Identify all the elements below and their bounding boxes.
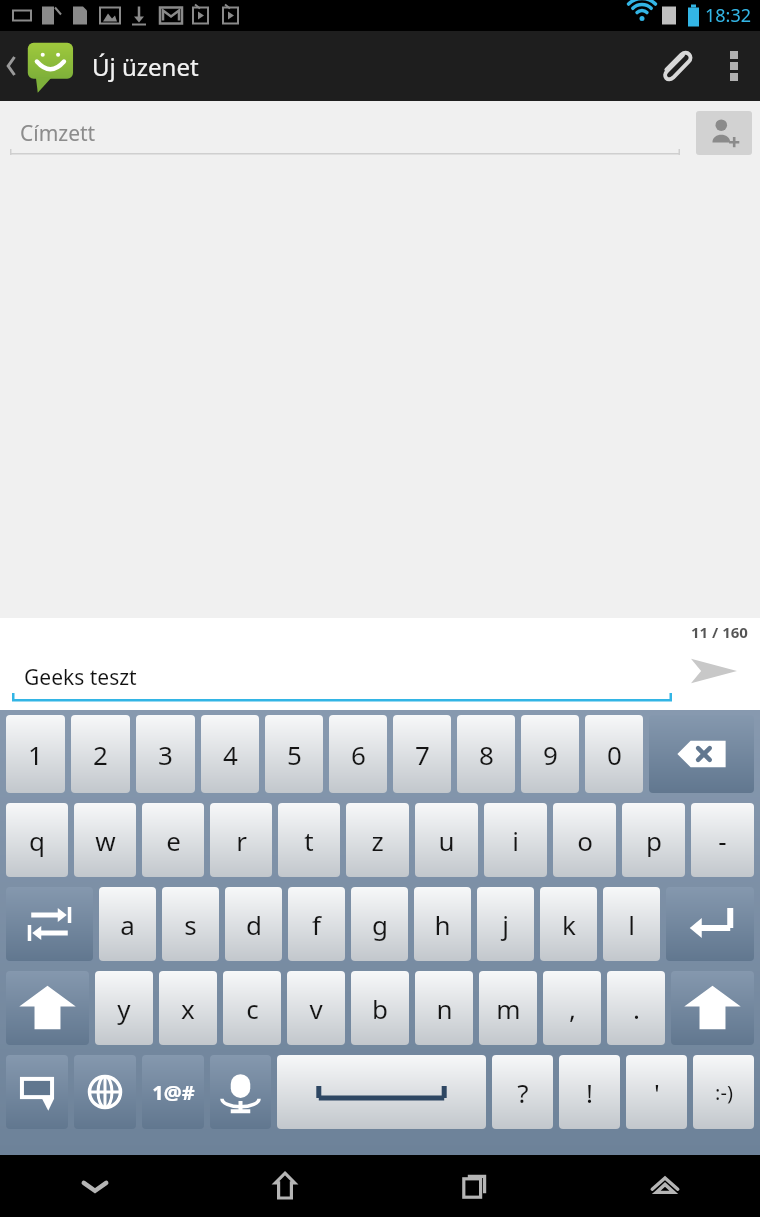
- button[interactable]: ': [626, 1055, 687, 1129]
- button[interactable]: up: [190, 1155, 380, 1217]
- button[interactable]: s: [162, 887, 219, 961]
- button[interactable]: Delete: [649, 715, 754, 793]
- button[interactable]: i: [484, 803, 547, 877]
- button[interactable]: l: [603, 887, 660, 961]
- button[interactable]: u: [415, 803, 478, 877]
- staticText: 1: [28, 737, 43, 772]
- button[interactable]: 9: [521, 715, 579, 793]
- staticText: m: [496, 991, 521, 1026]
- staticText: t: [304, 823, 314, 858]
- staticText: 18:32: [705, 3, 752, 28]
- button[interactable]: ?: [492, 1055, 553, 1129]
- button[interactable]: y: [95, 971, 153, 1045]
- button[interactable]: home: [570, 1155, 760, 1217]
- button[interactable]: Shift: [6, 971, 89, 1045]
- staticText: v: [309, 991, 323, 1026]
- button[interactable]: 6: [329, 715, 387, 793]
- staticText: i: [512, 823, 519, 858]
- button[interactable]: More options: [708, 31, 760, 101]
- button[interactable]: Keyboard settings: [6, 1055, 68, 1129]
- button[interactable]: j: [477, 887, 534, 961]
- button[interactable]: recents: [380, 1155, 570, 1217]
- button[interactable]: Új üzenet: [0, 37, 207, 95]
- button[interactable]: Attach: [642, 31, 708, 101]
- button[interactable]: down: [0, 1155, 190, 1217]
- staticText: j: [502, 907, 509, 942]
- staticText: l: [628, 907, 635, 942]
- staticText: .: [633, 991, 640, 1026]
- button[interactable]: n: [415, 971, 473, 1045]
- staticText: p: [646, 823, 662, 858]
- button[interactable]: Language: [74, 1055, 136, 1129]
- staticText: !: [586, 1075, 593, 1110]
- button[interactable]: r: [210, 803, 272, 877]
- button[interactable]: o: [553, 803, 616, 877]
- button[interactable]: g: [351, 887, 408, 961]
- button[interactable]: a: [99, 887, 156, 961]
- staticText: a: [120, 907, 135, 942]
- button[interactable]: h: [414, 887, 471, 961]
- button[interactable]: Space: [277, 1055, 486, 1129]
- staticText: 8: [479, 737, 494, 772]
- button[interactable]: Enter: [666, 887, 754, 961]
- button[interactable]: q: [6, 803, 68, 877]
- staticText: 1@#: [152, 1079, 195, 1106]
- button[interactable]: k: [540, 887, 597, 961]
- staticText: 7: [415, 737, 430, 772]
- staticText: f: [312, 907, 321, 942]
- button[interactable]: 1: [6, 715, 65, 793]
- button[interactable]: Add recipient: [696, 111, 752, 155]
- button[interactable]: -: [691, 803, 754, 877]
- button[interactable]: 3: [136, 715, 195, 793]
- button[interactable]: 7: [393, 715, 451, 793]
- button[interactable]: .: [607, 971, 665, 1045]
- button[interactable]: !: [559, 1055, 620, 1129]
- staticText: b: [372, 991, 388, 1026]
- staticText: :-): [715, 1079, 733, 1106]
- button[interactable]: Tab: [6, 887, 93, 961]
- staticText: 11 / 160: [691, 622, 748, 642]
- button[interactable]: x: [159, 971, 217, 1045]
- staticText: y: [117, 991, 131, 1026]
- staticText: 4: [223, 737, 238, 772]
- staticText: c: [246, 991, 259, 1026]
- button[interactable]: 4: [201, 715, 259, 793]
- button[interactable]: 8: [457, 715, 515, 793]
- staticText: x: [181, 991, 195, 1026]
- staticText: ': [654, 1075, 660, 1110]
- button[interactable]: p: [622, 803, 685, 877]
- button[interactable]: d: [225, 887, 282, 961]
- button[interactable]: w: [74, 803, 136, 877]
- button[interactable]: ,: [543, 971, 601, 1045]
- staticText: 2: [93, 737, 108, 772]
- button[interactable]: t: [278, 803, 340, 877]
- button[interactable]: Shift: [671, 971, 754, 1045]
- staticText: s: [184, 907, 197, 942]
- staticText: n: [436, 991, 453, 1026]
- button[interactable]: f: [288, 887, 345, 961]
- button[interactable]: Voice input: [210, 1055, 271, 1129]
- button[interactable]: b: [351, 971, 409, 1045]
- staticText: 0: [607, 737, 622, 772]
- staticText: q: [29, 823, 45, 858]
- button[interactable]: Geeks teszt: [12, 652, 672, 702]
- button[interactable]: c: [223, 971, 281, 1045]
- staticText: -: [718, 823, 727, 858]
- staticText: Geeks teszt: [24, 663, 137, 692]
- button[interactable]: 2: [71, 715, 130, 793]
- staticText: o: [577, 823, 593, 858]
- button[interactable]: Send: [678, 643, 750, 699]
- staticText: ?: [517, 1075, 529, 1110]
- staticText: h: [434, 907, 451, 942]
- staticText: d: [246, 907, 262, 942]
- button[interactable]: 5: [265, 715, 323, 793]
- button[interactable]: 0: [585, 715, 643, 793]
- button[interactable]: z: [346, 803, 409, 877]
- button[interactable]: Címzett: [10, 111, 680, 155]
- button[interactable]: :-): [693, 1055, 754, 1129]
- button[interactable]: m: [479, 971, 537, 1045]
- button[interactable]: e: [142, 803, 204, 877]
- button[interactable]: v: [287, 971, 345, 1045]
- staticText: u: [438, 823, 455, 858]
- button[interactable]: 1@#: [142, 1055, 204, 1129]
